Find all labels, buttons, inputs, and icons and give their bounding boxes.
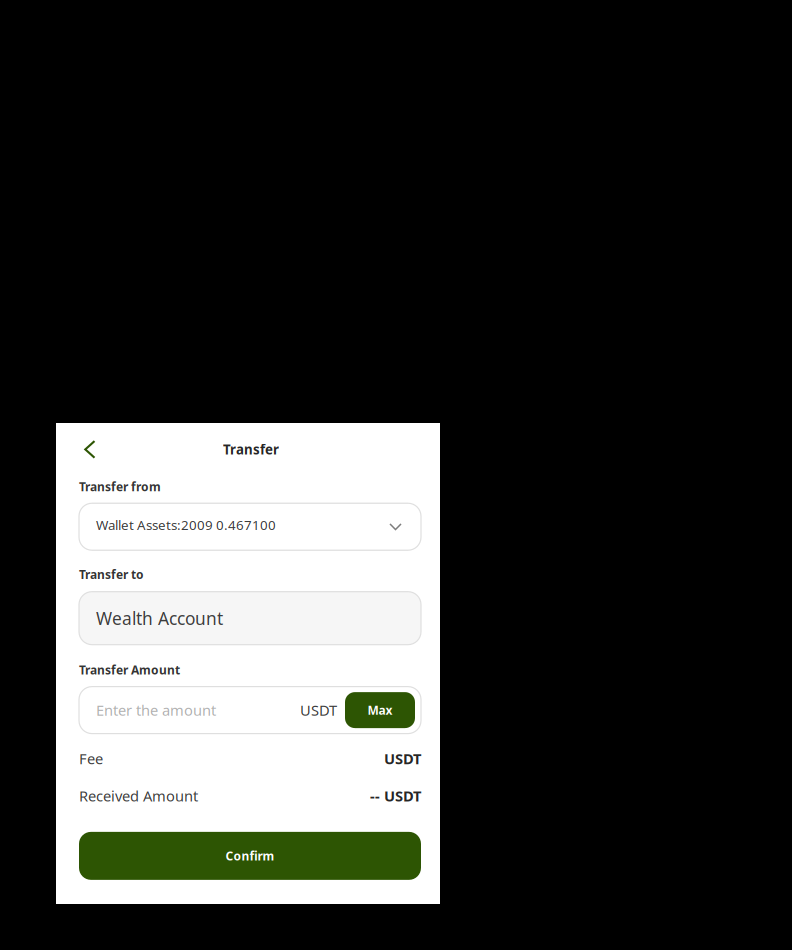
staticText: Transfer from	[79, 479, 161, 495]
button[interactable]: Wealth Account	[79, 592, 421, 645]
staticText: Transfer to	[79, 566, 144, 582]
staticText: Wallet Assets:2009 0.467100	[96, 516, 276, 534]
staticText: Received Amount	[79, 786, 198, 805]
staticText: Max	[367, 702, 392, 718]
button[interactable]: Max	[345, 692, 415, 728]
button[interactable]: Confirm	[79, 832, 421, 880]
staticText: Wealth Account	[96, 607, 223, 630]
staticText: -- USDT	[370, 786, 421, 805]
staticText: USDT	[384, 749, 421, 768]
staticText: Fee	[79, 749, 103, 768]
staticText: Confirm	[225, 848, 274, 864]
staticText: Transfer	[223, 440, 279, 458]
button[interactable]: Back	[73, 434, 121, 464]
button[interactable]: Wallet Assets:2009 0.467100	[79, 503, 421, 550]
button[interactable]: Enter the amount	[79, 687, 421, 734]
staticText: USDT	[300, 700, 337, 720]
staticText: Enter the amount	[96, 700, 216, 720]
staticText: Transfer Amount	[79, 662, 180, 678]
